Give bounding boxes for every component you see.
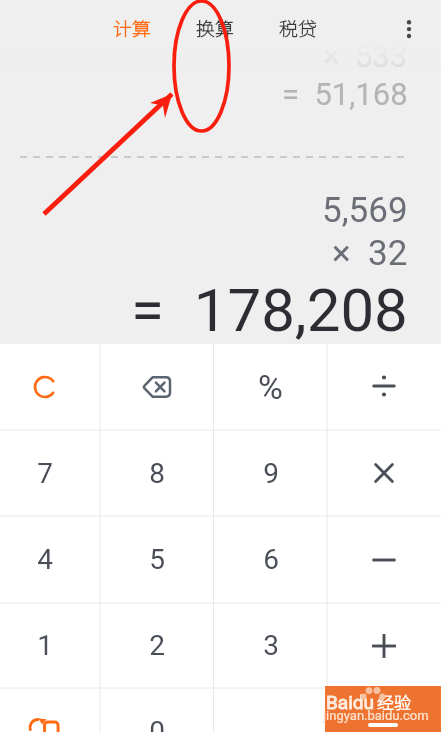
button[interactable]: Clear: [0, 344, 100, 430]
staticText: × 533: [323, 38, 408, 74]
other: Backspace: [142, 376, 172, 398]
button[interactable]: Minus: [327, 516, 441, 603]
staticText: Baidu: [326, 691, 374, 713]
button[interactable]: History: [0, 688, 100, 732]
button[interactable]: Multiply: [327, 430, 441, 516]
staticText: 经验: [377, 689, 411, 714]
staticText: = 178,208: [131, 275, 408, 345]
staticText: 换算: [196, 14, 235, 42]
other: Clear: [33, 375, 57, 399]
staticText: 2: [149, 629, 165, 662]
button[interactable]: 换算: [192, 8, 239, 48]
button[interactable]: 计算: [109, 8, 156, 48]
other: Multiply: [369, 458, 399, 488]
staticText: 5: [149, 543, 165, 576]
staticText: 8: [149, 457, 165, 490]
button[interactable]: 8: [100, 430, 214, 516]
staticText: 4: [37, 543, 53, 576]
staticText: =: [376, 714, 393, 732]
button[interactable]: 7: [0, 430, 100, 516]
button[interactable]: Backspace: [100, 344, 214, 430]
button[interactable]: [214, 688, 327, 732]
staticText: %: [258, 367, 283, 407]
staticText: 0: [149, 715, 165, 732]
button[interactable]: %: [214, 344, 327, 430]
button[interactable]: 税贷: [275, 8, 322, 48]
other: Divide: [369, 372, 399, 402]
staticText: × 32: [332, 233, 408, 274]
button[interactable]: 1: [0, 603, 100, 688]
other: Minus: [369, 545, 399, 575]
other: Plus: [369, 631, 399, 661]
staticText: 6: [263, 543, 279, 576]
staticText: 9: [263, 457, 279, 490]
staticText: 计算: [113, 14, 152, 42]
other: History: [30, 712, 60, 732]
button[interactable]: 2: [100, 603, 214, 688]
button[interactable]: Divide: [327, 344, 441, 430]
staticText: 7: [37, 457, 53, 490]
button[interactable]: =: [327, 688, 441, 732]
staticText: 1: [37, 629, 53, 662]
button[interactable]: 3: [214, 603, 327, 688]
button[interactable]: 5: [100, 516, 214, 603]
staticText: = 51,168: [282, 76, 408, 112]
button[interactable]: Plus: [327, 603, 441, 688]
button[interactable]: 4: [0, 516, 100, 603]
button[interactable]: 0: [100, 688, 214, 732]
staticText: 5,569: [322, 190, 408, 231]
button[interactable]: More options: [386, 4, 432, 52]
staticText: jingyan.baidu.com: [323, 708, 429, 723]
staticText: 3: [263, 629, 279, 662]
button[interactable]: 9: [214, 430, 327, 516]
staticText: 税贷: [279, 14, 318, 42]
button[interactable]: 6: [214, 516, 327, 603]
